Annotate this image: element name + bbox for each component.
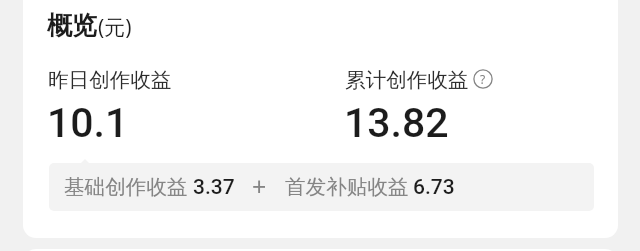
staticText: 概览 (47, 10, 97, 41)
button[interactable]: 累计创作收益 (341, 62, 469, 140)
button[interactable]: 累计创作收益说明 (473, 69, 493, 89)
staticText: 累计创作收益 (345, 67, 469, 93)
staticText: 13.82 (344, 99, 449, 147)
staticText: 基础创作收益 (64, 174, 188, 200)
button[interactable]: 基础创作收益 (49, 163, 594, 211)
staticText: 6.73 (413, 175, 455, 200)
staticText: (元) (98, 13, 132, 42)
staticText: ? (480, 71, 486, 87)
button[interactable]: 概览 (47, 10, 131, 41)
staticText: 10.1 (47, 99, 129, 147)
staticText: 3.37 (193, 175, 235, 200)
staticText: 昨日创作收益 (48, 67, 172, 93)
staticText: 首发补贴收益 (285, 174, 409, 200)
button[interactable]: 昨日创作收益 (44, 62, 204, 140)
staticText: + (252, 169, 267, 203)
